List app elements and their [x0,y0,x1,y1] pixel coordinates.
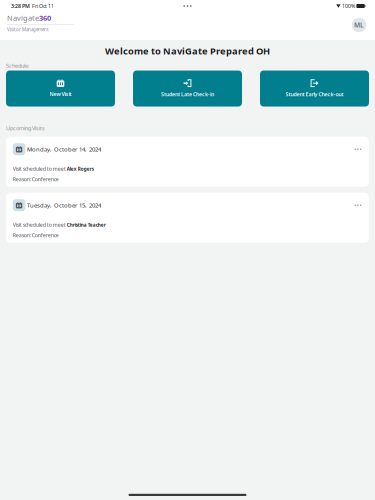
staticText: Tuesday, October 15, 2024 [27,201,101,209]
staticText: Alex Rogers [67,166,94,172]
staticText: Reason: Conference [13,176,59,183]
button[interactable]: Tuesday, October 15, 2024 [6,193,369,243]
staticText: Visitor Management [7,26,49,32]
staticText: 3:28 PM [11,2,30,10]
button[interactable]: Student Early Check-out [260,70,369,106]
button[interactable]: Account [349,15,369,35]
staticText: 100% [342,2,355,10]
staticText: Visit scheduled to meet [13,221,67,228]
staticText: New Visit [49,91,71,98]
staticText: Navigate [7,13,39,23]
staticText: Visit scheduled to meet [13,165,67,172]
button[interactable]: Student Late Check-in [133,70,242,106]
button[interactable]: New Visit [6,70,115,106]
staticText: Monday, October 14, 2024 [27,145,101,153]
staticText: Schedule: [6,62,30,69]
staticText: Welcome to NaviGate Prepared OH [105,45,270,57]
staticText: Fri Oct 11 [30,2,54,10]
staticText: Christina Teacher [67,222,106,228]
staticText: Upcoming Visits [6,124,45,132]
staticText: Reason: Conference [13,232,59,239]
staticText: Student Early Check-out [285,91,343,98]
staticText: 360 [39,13,51,23]
button[interactable]: Monday, October 14, 2024 [6,137,369,187]
staticText: ML [354,20,364,30]
staticText: Student Late Check-in [161,91,214,98]
